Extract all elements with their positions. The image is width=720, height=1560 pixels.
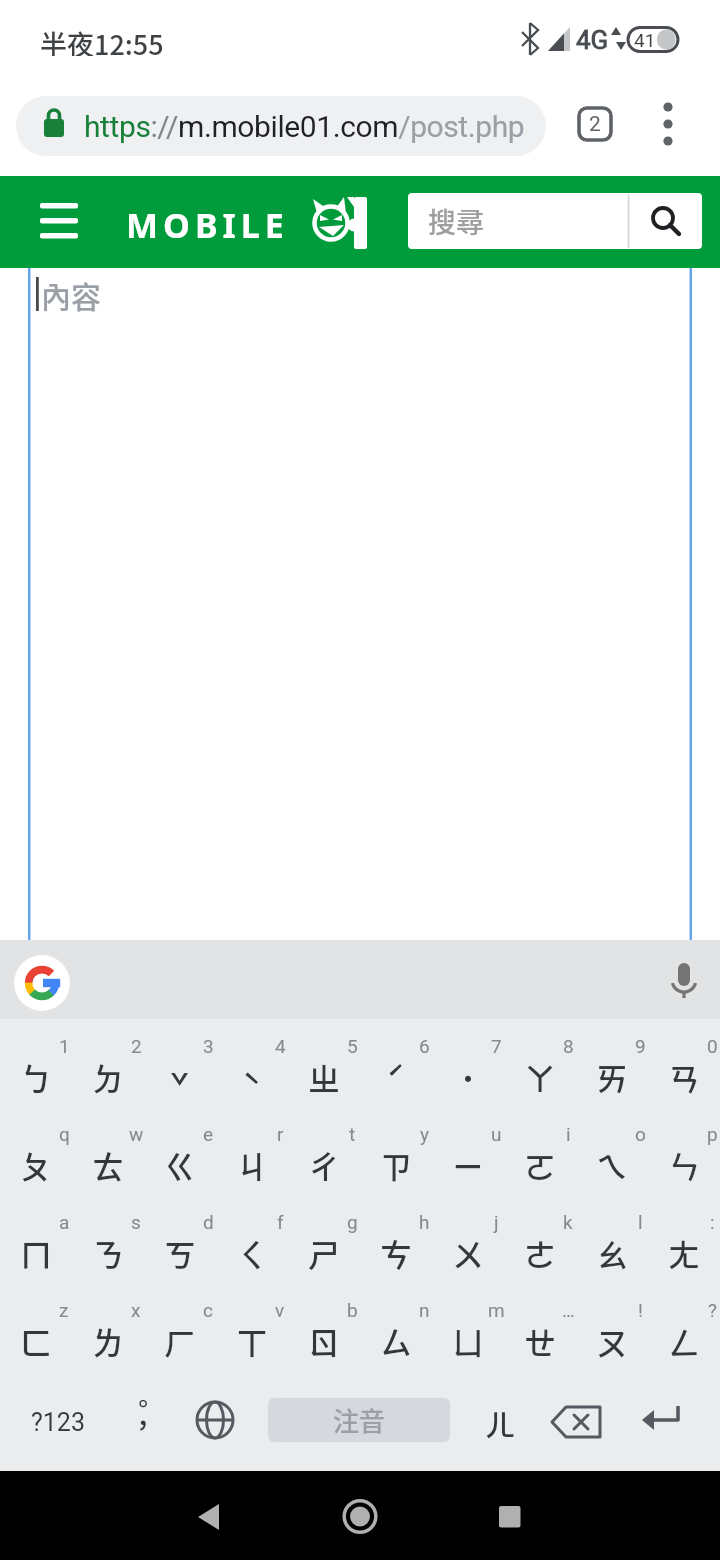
- staticText: x: [131, 1299, 141, 1321]
- button[interactable]: [360, 1114, 432, 1202]
- button[interactable]: [0, 1202, 72, 1290]
- staticText: ㄏ: [164, 1318, 197, 1364]
- staticText: 7: [491, 1035, 502, 1057]
- staticText: ㄨ: [452, 1230, 485, 1276]
- staticText: ㄒ: [236, 1318, 269, 1364]
- button[interactable]: [14, 955, 70, 1011]
- button[interactable]: [660, 955, 710, 1011]
- button[interactable]: [0, 1290, 72, 1378]
- button[interactable]: [576, 1026, 648, 1114]
- button[interactable]: [72, 1290, 144, 1378]
- button[interactable]: [576, 1202, 648, 1290]
- staticText: 2: [589, 112, 601, 137]
- button[interactable]: [72, 1114, 144, 1202]
- button[interactable]: [144, 1290, 216, 1378]
- staticText: m: [488, 1299, 505, 1321]
- staticText: z: [59, 1299, 69, 1321]
- staticText: https://m.mobile01.com/post.php: [84, 109, 525, 144]
- staticText: h: [419, 1211, 430, 1233]
- button[interactable]: [20, 1378, 96, 1466]
- button[interactable]: [432, 1114, 504, 1202]
- button[interactable]: [182, 1378, 248, 1466]
- button[interactable]: [544, 1378, 616, 1466]
- staticText: ㄉ: [92, 1054, 125, 1100]
- button[interactable]: [648, 1026, 720, 1114]
- button[interactable]: [648, 1202, 720, 1290]
- button[interactable]: [0, 1026, 72, 1114]
- button[interactable]: 注音: [268, 1398, 450, 1442]
- button[interactable]: [72, 1026, 144, 1114]
- staticText: ㄤ: [668, 1230, 701, 1276]
- button[interactable]: [216, 1114, 288, 1202]
- button[interactable]: [630, 1378, 700, 1466]
- button[interactable]: [648, 1290, 720, 1378]
- staticText: ㄛ: [524, 1142, 557, 1188]
- staticText: r: [277, 1123, 284, 1145]
- staticText: a: [59, 1211, 70, 1233]
- button[interactable]: [644, 99, 692, 149]
- button[interactable]: [110, 1378, 176, 1466]
- button[interactable]: [504, 1290, 576, 1378]
- button[interactable]: [504, 1026, 576, 1114]
- button[interactable]: [288, 1114, 360, 1202]
- button[interactable]: [576, 1290, 648, 1378]
- staticText: ㄅ: [20, 1054, 53, 1100]
- button[interactable]: 2: [577, 106, 613, 142]
- button[interactable]: 內容: [28, 268, 692, 940]
- staticText: ㄣ: [668, 1142, 701, 1188]
- staticText: c: [203, 1299, 213, 1321]
- staticText: o: [635, 1123, 646, 1145]
- staticText: ㄧ: [452, 1142, 485, 1188]
- button[interactable]: [164, 1471, 274, 1560]
- staticText: i: [566, 1123, 571, 1145]
- staticText: l: [638, 1211, 643, 1233]
- button[interactable]: [144, 1202, 216, 1290]
- button[interactable]: [360, 1026, 432, 1114]
- staticText: ˇ: [170, 1062, 190, 1108]
- staticText: ㄆ: [20, 1142, 53, 1188]
- button[interactable]: [216, 1202, 288, 1290]
- button[interactable]: [466, 1378, 534, 1466]
- staticText: ㄍ: [164, 1142, 197, 1188]
- staticText: 41: [634, 29, 656, 51]
- button[interactable]: [630, 193, 702, 249]
- staticText: ㄝ: [524, 1318, 557, 1364]
- button[interactable]: [504, 1202, 576, 1290]
- button[interactable]: [16, 96, 546, 156]
- staticText: w: [129, 1123, 144, 1145]
- staticText: ?: [708, 1299, 717, 1321]
- button[interactable]: MOBILE: [126, 190, 372, 254]
- staticText: ㄟ: [596, 1142, 629, 1188]
- button[interactable]: [432, 1290, 504, 1378]
- staticText: t: [349, 1123, 356, 1145]
- button[interactable]: [216, 1290, 288, 1378]
- button[interactable]: [288, 1026, 360, 1114]
- staticText: ㄓ: [308, 1054, 341, 1100]
- button[interactable]: [72, 1202, 144, 1290]
- button[interactable]: [504, 1114, 576, 1202]
- staticText: f: [277, 1211, 284, 1233]
- staticText: ㄚ: [524, 1054, 557, 1100]
- staticText: ㄎ: [164, 1230, 197, 1276]
- staticText: ㄗ: [380, 1142, 413, 1188]
- button[interactable]: [288, 1202, 360, 1290]
- staticText: :: [710, 1211, 715, 1233]
- staticText: 搜尋: [428, 201, 485, 242]
- button[interactable]: [432, 1026, 504, 1114]
- button[interactable]: [144, 1114, 216, 1202]
- button[interactable]: [305, 1471, 415, 1560]
- button[interactable]: [455, 1471, 565, 1560]
- button[interactable]: [144, 1026, 216, 1114]
- button[interactable]: [288, 1290, 360, 1378]
- button[interactable]: [432, 1202, 504, 1290]
- button[interactable]: [648, 1114, 720, 1202]
- button[interactable]: [408, 193, 702, 249]
- staticText: e: [203, 1123, 214, 1145]
- button[interactable]: [576, 1114, 648, 1202]
- button[interactable]: [216, 1026, 288, 1114]
- button[interactable]: [360, 1290, 432, 1378]
- button[interactable]: [0, 1114, 72, 1202]
- button[interactable]: [28, 190, 90, 254]
- staticText: ㄑ: [236, 1230, 269, 1276]
- button[interactable]: [360, 1202, 432, 1290]
